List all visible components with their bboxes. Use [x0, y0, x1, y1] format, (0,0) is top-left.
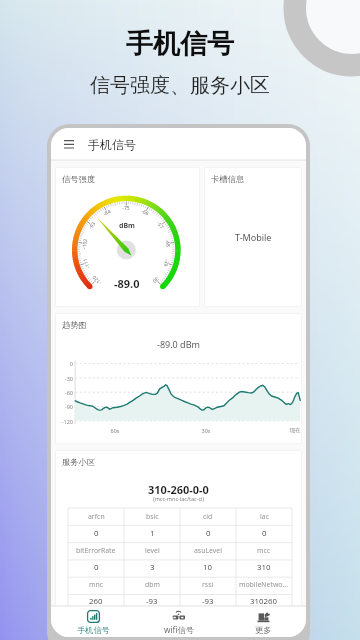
staticText: dbm [145, 580, 160, 589]
staticText: 0 [262, 528, 267, 539]
staticText: bsic [146, 512, 159, 521]
staticText: 0 [206, 528, 211, 539]
staticText: -60 [57, 389, 73, 396]
staticText: 手机信号 [77, 625, 110, 635]
staticText: 更多 [255, 625, 272, 635]
button[interactable]: Menu [51, 128, 306, 160]
staticText: -90 [57, 403, 73, 410]
staticText: 30s [200, 427, 212, 434]
staticText: -93 [146, 596, 158, 607]
staticText: cid [203, 512, 213, 521]
staticText: 3 [150, 562, 155, 573]
button[interactable]: 更多 [221, 607, 306, 637]
staticText: 信号强度、服务小区 [90, 73, 270, 98]
staticText: -30 [57, 375, 73, 382]
other: wifi信号 [172, 609, 185, 622]
staticText: asuLevel [194, 546, 222, 555]
staticText: 手机信号 [126, 27, 234, 61]
staticText: 0 [57, 360, 73, 367]
other: 手机信号 [87, 610, 100, 623]
staticText: -120 [57, 418, 73, 425]
other: 更多 [257, 610, 270, 623]
staticText: 10 [203, 562, 213, 573]
button[interactable]: 手机信号 [51, 607, 136, 637]
button[interactable]: wifi信号 [136, 607, 221, 637]
staticText: mobileNetwo... [239, 580, 289, 589]
staticText: 260 [89, 596, 103, 607]
staticText: mcc [257, 546, 271, 555]
staticText: mnc [89, 580, 104, 589]
staticText: 60s [109, 427, 121, 434]
staticText: 310 [257, 562, 271, 573]
staticText: 0 [94, 528, 99, 539]
staticText: (mcc-mnc-lac/tac-ci) [153, 495, 205, 502]
staticText: -93 [202, 596, 214, 607]
staticText: 现在 [288, 427, 302, 434]
staticText: level [145, 546, 160, 555]
staticText: 服务小区 [62, 457, 96, 467]
staticText: dBm [119, 221, 135, 231]
staticText: bitErrorRate [76, 546, 116, 555]
staticText: 手机信号 [88, 137, 136, 152]
staticText: wifi信号 [164, 624, 194, 635]
staticText: 310260 [250, 596, 278, 607]
staticText: 信号强度 [62, 174, 96, 184]
staticText: 0 [94, 562, 99, 573]
staticText: 310-260-0-0 [148, 482, 209, 497]
staticText: 卡槽信息 [211, 174, 245, 184]
staticText: T-Mobile [235, 231, 272, 243]
staticText: -89.0 dBm [157, 338, 200, 350]
other: Menu [64, 140, 74, 148]
staticText: arfcn [88, 512, 105, 521]
staticText: 1 [150, 528, 155, 539]
staticText: -89.0 [114, 276, 140, 291]
staticText: rssi [202, 580, 214, 589]
staticText: 趋势图 [62, 320, 87, 330]
staticText: lac [260, 512, 269, 521]
